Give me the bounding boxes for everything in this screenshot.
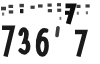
other: Scanned digits 7 3 6 7 (0, 0, 100, 64)
